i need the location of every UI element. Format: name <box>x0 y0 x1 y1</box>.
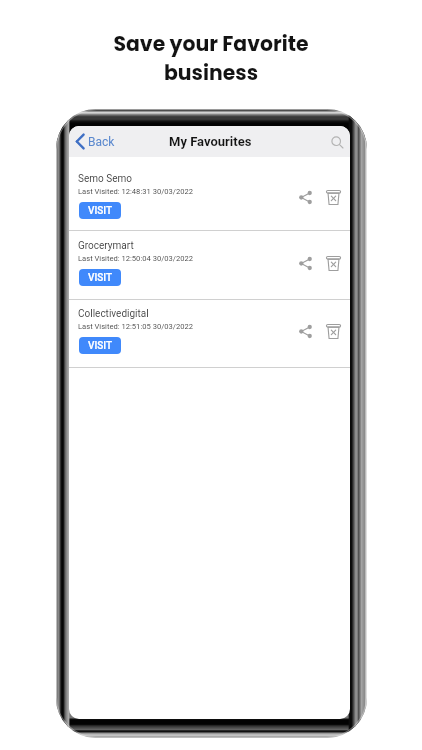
button[interactable]: Delete <box>324 188 343 207</box>
staticText: VISIT <box>88 205 113 217</box>
staticText: Last Visited: 12:48:31 30/03/2022 <box>78 187 194 196</box>
staticText: Semo Semo <box>78 173 132 185</box>
staticText: Last Visited: 12:51:05 30/03/2022 <box>78 322 194 331</box>
button[interactable]: VISIT <box>79 337 121 354</box>
button[interactable]: Delete <box>324 322 343 341</box>
button[interactable]: Grocerymart <box>69 231 350 299</box>
button[interactable]: Delete <box>324 254 343 273</box>
button[interactable]: Back <box>69 130 121 153</box>
button[interactable]: Share <box>296 188 315 207</box>
button[interactable]: Share <box>296 322 315 341</box>
staticText: Collectivedigital <box>78 308 149 320</box>
staticText: VISIT <box>88 272 113 284</box>
staticText: Last Visited: 12:50:04 30/03/2022 <box>78 254 194 263</box>
button[interactable]: Collectivedigital <box>69 300 350 367</box>
staticText: VISIT <box>88 340 113 352</box>
button[interactable]: VISIT <box>79 202 121 219</box>
staticText: Grocerymart <box>78 240 134 252</box>
button[interactable]: Semo Semo <box>69 157 350 230</box>
staticText: My Favourites <box>169 134 252 149</box>
button[interactable]: VISIT <box>79 269 121 286</box>
button[interactable]: Search <box>328 133 346 151</box>
staticText: Save your Favorite business <box>113 30 309 87</box>
staticText: Back <box>88 135 115 149</box>
button[interactable]: Share <box>296 254 315 273</box>
